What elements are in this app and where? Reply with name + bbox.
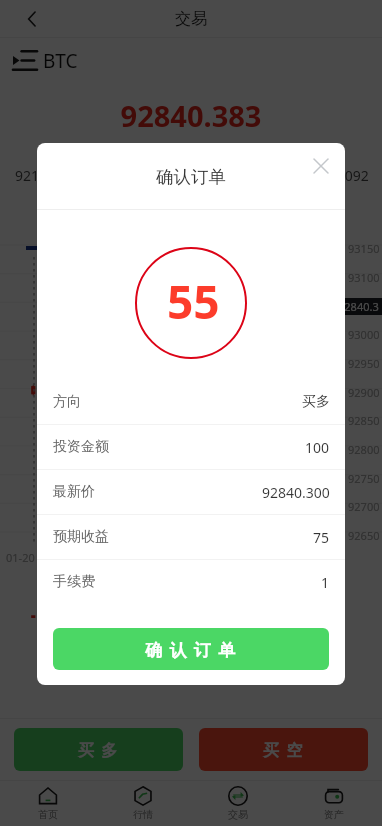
staticText: 行情 xyxy=(133,808,153,821)
staticText: 01-20 xyxy=(6,550,35,565)
staticText: 预期收益 xyxy=(53,528,109,546)
button[interactable]: 确 认 订 单 xyxy=(53,628,329,670)
button[interactable]: 买 空 xyxy=(199,728,368,771)
staticText: 92840.3 xyxy=(338,299,379,314)
staticText: 方向 xyxy=(53,393,81,411)
button[interactable]: 买 多 xyxy=(14,728,183,771)
staticText: 92840.300 xyxy=(262,483,330,502)
staticText: 92800 xyxy=(348,442,380,457)
button[interactable]: 资产 xyxy=(286,786,382,821)
staticText: 92950 xyxy=(348,356,380,371)
staticText: 93050 xyxy=(348,298,380,313)
staticText: 92700 xyxy=(348,499,380,514)
staticText: 93000 xyxy=(348,327,380,342)
staticText: 75 xyxy=(313,528,330,547)
button[interactable]: Back xyxy=(18,5,46,33)
staticText: 买 空 xyxy=(263,739,304,761)
staticText: 92750 xyxy=(348,471,380,486)
staticText: 01-20 xyxy=(108,550,137,565)
staticText: 55 xyxy=(167,270,220,333)
button[interactable]: BTC xyxy=(13,38,366,83)
staticText: 确 认 订 单 xyxy=(145,638,237,661)
staticText: 92840.383 xyxy=(0,96,382,135)
staticText: 01-20 xyxy=(313,550,342,565)
staticText: BTC xyxy=(43,48,78,74)
staticText: 93102.092 xyxy=(301,166,369,185)
staticText: 92850 xyxy=(348,413,380,428)
staticText: 买 多 xyxy=(78,739,119,761)
staticText: 投资金额 xyxy=(53,438,109,456)
staticText: 01-20 xyxy=(211,550,240,565)
staticText: 100 xyxy=(305,438,330,457)
button[interactable]: 首页 xyxy=(0,786,95,821)
staticText: 资产 xyxy=(324,808,344,821)
button[interactable]: 交易 xyxy=(190,786,286,821)
staticText: 确认订单 xyxy=(156,166,226,188)
staticText: 93150 xyxy=(348,241,380,256)
staticText: 首页 xyxy=(38,808,58,821)
staticText: 92900 xyxy=(348,385,380,400)
button[interactable]: Close xyxy=(304,149,338,183)
staticText: 交易 xyxy=(175,9,207,29)
staticText: 买多 xyxy=(302,393,330,411)
staticText: 手续费 xyxy=(53,573,95,591)
staticText: 92650 xyxy=(348,528,380,543)
staticText: 交易 xyxy=(228,808,248,821)
staticText: 最新价 xyxy=(53,483,95,501)
staticText: 92176.215 xyxy=(15,166,83,185)
staticText: 93100 xyxy=(348,270,380,285)
button[interactable]: 行情 xyxy=(95,786,190,821)
staticText: 1 xyxy=(321,573,330,592)
